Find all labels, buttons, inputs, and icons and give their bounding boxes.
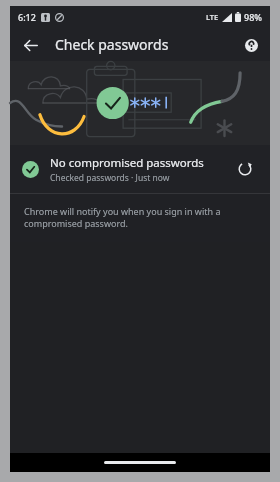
button[interactable]: Help <box>239 33 263 57</box>
staticText: 98% <box>244 11 262 23</box>
staticText: No compromised passwords <box>50 155 204 171</box>
staticText: LTE <box>206 12 219 22</box>
button[interactable]: No compromised passwords <box>10 145 270 193</box>
staticText: Checked passwords · Just now <box>50 172 170 184</box>
button[interactable]: Refresh <box>232 156 258 182</box>
button[interactable]: Back <box>16 31 44 59</box>
staticText: 6:12 <box>18 11 36 23</box>
staticText: Chrome will notify you when you sign in … <box>24 205 250 230</box>
staticText: Check passwords <box>55 35 169 54</box>
